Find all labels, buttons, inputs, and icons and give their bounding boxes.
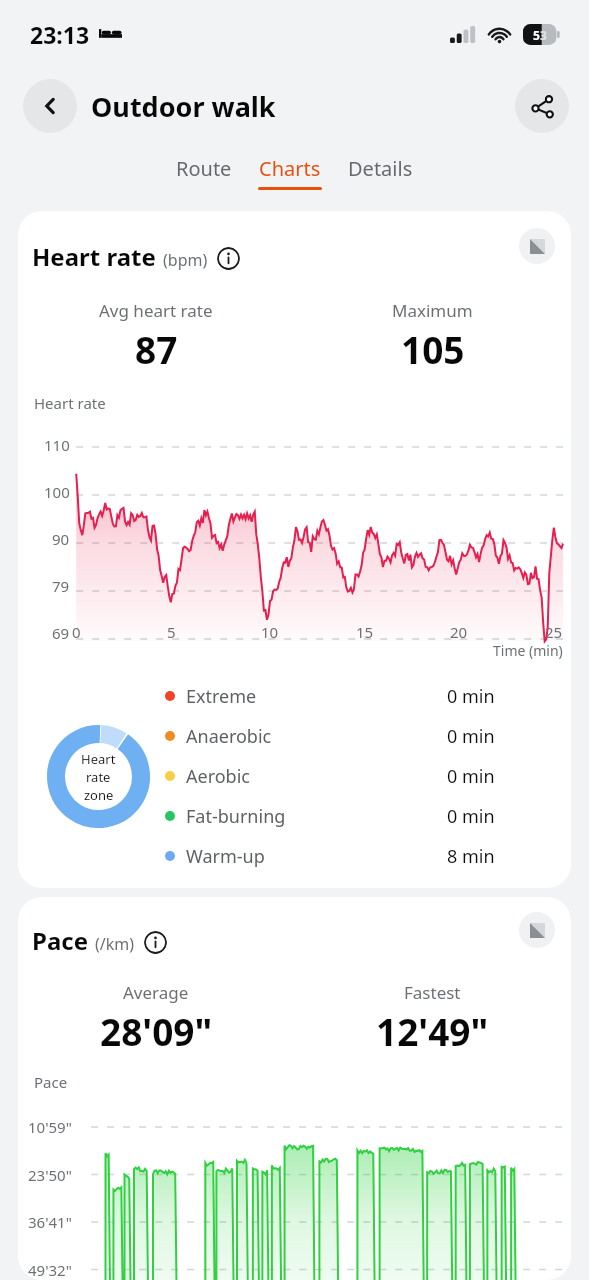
staticText: 0 [72, 622, 81, 642]
staticText: 12'49" [376, 1006, 489, 1056]
staticText: 5 [167, 622, 176, 642]
staticText: 69 [52, 623, 70, 643]
staticText: Details [348, 155, 413, 182]
staticText: 110 [44, 435, 70, 455]
staticText: Pace [34, 1072, 68, 1092]
staticText: 0 min [447, 684, 495, 709]
staticText: 10 [261, 622, 279, 642]
staticText: 23:13 [30, 19, 90, 50]
staticText: Fat-burning [186, 804, 286, 829]
staticText: Heart [81, 750, 116, 768]
button[interactable]: Aerobic [165, 756, 551, 796]
staticText: 3 [540, 27, 547, 43]
staticText: Time (min) [493, 641, 563, 660]
staticText: 79 [52, 576, 70, 596]
staticText: (/km) [95, 933, 135, 955]
staticText: Average [123, 981, 189, 1004]
staticText: 20 [450, 622, 468, 642]
button[interactable]: Expand chart [519, 228, 555, 264]
staticText: Aerobic [186, 764, 250, 789]
staticText: 87 [135, 324, 178, 374]
staticText: 0 min [447, 764, 495, 789]
staticText: 15 [356, 622, 374, 642]
staticText: 8 min [447, 844, 495, 869]
staticText: 28'09" [100, 1006, 213, 1056]
staticText: zone [84, 786, 114, 804]
staticText: Pace [32, 924, 88, 957]
button[interactable]: Details [340, 152, 421, 193]
button[interactable]: Route [168, 152, 240, 193]
staticText: 0 min [447, 724, 495, 749]
staticText: (bpm) [163, 249, 208, 271]
button[interactable]: About Pace [144, 931, 167, 954]
staticText: 0 min [447, 804, 495, 829]
staticText: Route [176, 155, 232, 182]
staticText: Maximum [392, 299, 473, 322]
staticText: rate [86, 768, 111, 786]
button[interactable]: Anaerobic [165, 716, 551, 756]
staticText: Avg heart rate [99, 299, 213, 322]
staticText: 5 [533, 27, 540, 43]
staticText: 90 [52, 529, 70, 549]
staticText: 36'41" [28, 1212, 72, 1232]
button[interactable]: Charts [250, 152, 330, 193]
staticText: 105 [401, 324, 465, 374]
button[interactable]: Expand chart [519, 912, 555, 948]
button[interactable]: Share [515, 79, 569, 133]
staticText: Warm-up [186, 844, 265, 869]
button[interactable]: Back [23, 79, 77, 133]
staticText: Charts [259, 155, 321, 182]
staticText: Heart rate [32, 240, 156, 273]
button[interactable]: Warm-up [165, 836, 551, 876]
staticText: Fastest [404, 981, 461, 1004]
staticText: 23'50" [28, 1165, 72, 1185]
staticText: 25 [545, 622, 563, 642]
staticText: Outdoor walk [91, 88, 276, 125]
staticText: Anaerobic [186, 724, 272, 749]
staticText: Heart rate [34, 393, 106, 413]
staticText: 10'59" [28, 1117, 72, 1137]
staticText: 100 [44, 482, 70, 502]
button[interactable]: Extreme [165, 676, 551, 716]
staticText: Extreme [186, 684, 257, 709]
staticText: 49'32" [28, 1260, 72, 1280]
button[interactable]: Fat-burning [165, 796, 551, 836]
button[interactable]: About Heart rate [217, 247, 240, 270]
